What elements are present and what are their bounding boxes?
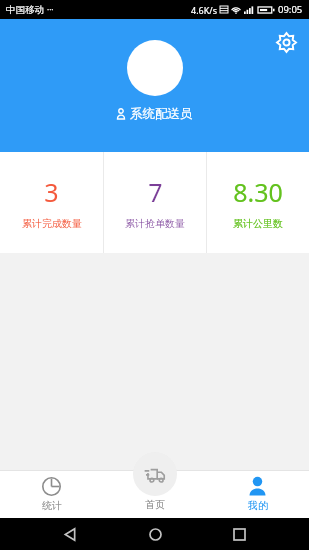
button[interactable]: Home [140, 519, 170, 549]
staticText: 中国移动 [6, 4, 44, 16]
button[interactable]: 我的 [206, 470, 309, 518]
staticText: 首页 [145, 498, 165, 511]
staticText: 累计抢单数量 [125, 217, 185, 230]
button[interactable]: 7 [104, 152, 206, 253]
staticText: 7 [148, 175, 163, 209]
staticText: ··· [47, 4, 54, 15]
staticText: 4.6K/s [191, 4, 217, 16]
button[interactable]: Recent apps [224, 519, 254, 549]
staticText: 09:05 [278, 3, 303, 16]
button[interactable]: Settings [271, 27, 301, 57]
staticText: 累计完成数量 [22, 217, 82, 230]
button[interactable]: 3 [0, 152, 103, 253]
staticText: 统计 [42, 499, 62, 512]
button[interactable]: 统计 [0, 470, 103, 518]
button[interactable]: Profile photo [127, 40, 183, 96]
button[interactable]: 首页 [133, 452, 177, 511]
button[interactable]: 8.30 [207, 152, 309, 253]
staticText: 我的 [248, 499, 268, 512]
staticText: 系统配送员 [130, 106, 193, 122]
staticText: 3 [44, 175, 59, 209]
staticText: 8.30 [233, 175, 283, 209]
staticText: 累计公里数 [233, 217, 283, 230]
button[interactable]: Back [55, 519, 85, 549]
